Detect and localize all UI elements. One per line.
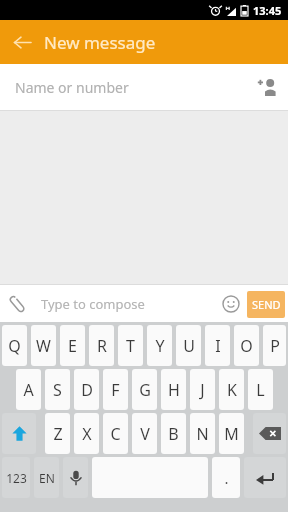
staticText: L (256, 379, 265, 401)
staticText: B (168, 423, 179, 445)
staticText: 13:45 (253, 3, 282, 18)
staticText: SEND (252, 297, 281, 312)
button[interactable]: M (219, 413, 244, 454)
button[interactable]: Z (45, 413, 70, 454)
button[interactable]: V (132, 413, 157, 454)
button[interactable]: Attach (0, 287, 34, 321)
staticText: C (110, 423, 121, 445)
staticText: Name or number (15, 78, 129, 97)
button[interactable]: F (103, 369, 128, 410)
button[interactable]: O (234, 325, 259, 366)
button[interactable]: Emoji (217, 290, 245, 318)
button[interactable]: Shift (2, 413, 36, 454)
button[interactable]: P (263, 325, 286, 366)
button[interactable]: U (176, 325, 201, 366)
staticText: New message (44, 31, 156, 54)
button[interactable]: S (45, 369, 70, 410)
button[interactable]: Enter (244, 457, 286, 498)
button[interactable]: I (205, 325, 230, 366)
button[interactable]: J (190, 369, 215, 410)
button[interactable]: SEND (247, 291, 285, 318)
button[interactable]: G (132, 369, 157, 410)
staticText: K (227, 379, 237, 401)
button[interactable]: Q (2, 325, 27, 366)
button[interactable]: . (212, 457, 240, 498)
button[interactable]: Voice input (63, 457, 88, 498)
staticText: T (126, 335, 135, 357)
staticText: O (240, 335, 253, 357)
button[interactable]: Back (0, 20, 44, 64)
staticText: U (183, 335, 195, 357)
staticText: Z (53, 423, 63, 445)
button[interactable]: EN (34, 457, 59, 498)
staticText: Q (8, 335, 21, 357)
button[interactable]: R (89, 325, 114, 366)
staticText: V (140, 423, 150, 445)
staticText: E (68, 335, 77, 357)
button[interactable]: X (74, 413, 99, 454)
button[interactable]: D (74, 369, 99, 410)
button[interactable]: C (103, 413, 128, 454)
button[interactable]: L (248, 369, 273, 410)
button[interactable]: B (161, 413, 186, 454)
button[interactable]: E (60, 325, 85, 366)
staticText: H (168, 379, 180, 401)
staticText: I (215, 335, 221, 357)
staticText: R (97, 335, 107, 357)
button[interactable]: K (219, 369, 244, 410)
button[interactable]: T (118, 325, 143, 366)
staticText: P (270, 335, 280, 357)
staticText: S (53, 379, 62, 401)
staticText: N (196, 423, 209, 445)
button[interactable]: Backspace (253, 413, 286, 454)
staticText: A (23, 379, 34, 401)
staticText: X (82, 423, 92, 445)
button[interactable]: A (16, 369, 41, 410)
staticText: W (36, 335, 51, 357)
staticText: F (111, 379, 120, 401)
button[interactable]: W (31, 325, 56, 366)
button[interactable]: Add contact (246, 66, 288, 108)
button[interactable]: H (161, 369, 186, 410)
button[interactable]: N (190, 413, 215, 454)
staticText: 123 (6, 470, 27, 486)
staticText: Type to compose (41, 295, 145, 313)
staticText: Y (155, 335, 165, 357)
staticText: . (224, 468, 229, 488)
button[interactable]: 123 (2, 457, 30, 498)
staticText: G (139, 379, 151, 401)
button[interactable]: Name or number (0, 64, 288, 110)
staticText: J (200, 379, 205, 401)
staticText: EN (39, 470, 55, 486)
button[interactable]: Y (147, 325, 172, 366)
staticText: M (224, 423, 239, 445)
staticText: D (81, 379, 93, 401)
